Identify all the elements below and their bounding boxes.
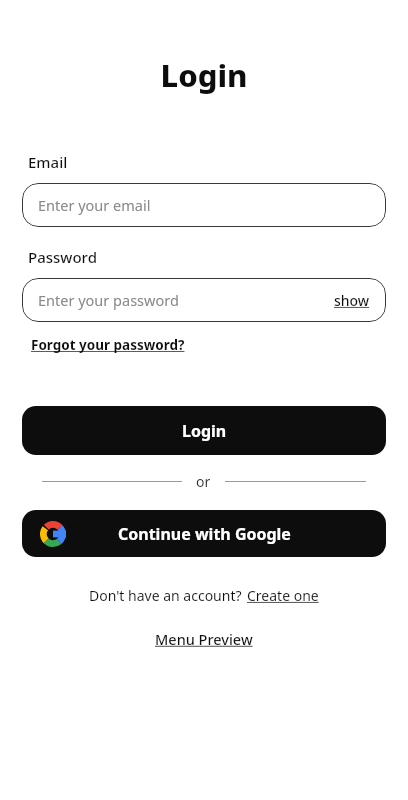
staticText: show xyxy=(334,291,370,310)
staticText: Create one xyxy=(247,586,319,605)
staticText: Password xyxy=(28,247,97,267)
staticText: or xyxy=(196,472,211,491)
staticText: Don't have an account? xyxy=(89,586,242,605)
button[interactable]: Forgot your password? xyxy=(31,336,185,354)
button[interactable]: Menu Preview xyxy=(155,629,253,649)
button[interactable]: Enter your email xyxy=(22,183,386,227)
button[interactable]: Login xyxy=(22,406,386,455)
staticText: Continue with Google xyxy=(118,523,291,545)
staticText: Enter your email xyxy=(38,195,151,215)
button[interactable]: Create one xyxy=(247,586,319,605)
staticText: Login xyxy=(182,420,227,442)
staticText: Menu Preview xyxy=(155,629,253,649)
button[interactable]: Enter your password xyxy=(22,278,386,322)
button[interactable]: Continue with Google xyxy=(22,510,386,557)
staticText: Email xyxy=(28,152,68,172)
staticText: Forgot your password? xyxy=(31,336,185,354)
staticText: Enter your password xyxy=(38,290,179,310)
button[interactable]: show xyxy=(334,291,370,310)
staticText: Login xyxy=(160,54,248,96)
